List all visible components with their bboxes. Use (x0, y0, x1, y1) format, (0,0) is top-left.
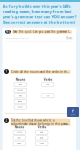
staticText: Verbs (44, 78, 52, 81)
button[interactable]: jump (35, 136, 48, 140)
staticText: Nouns (15, 125, 24, 129)
button[interactable]: garden (14, 88, 26, 92)
staticText: school (17, 131, 22, 133)
button[interactable]: river (13, 136, 25, 140)
staticText: Nouns (16, 78, 25, 81)
staticText: ML (6, 30, 10, 33)
staticText: PUBLISHED: 09:14 EDT, 12 May 2016 (5, 37, 29, 39)
staticText: Verbs (38, 125, 46, 129)
button[interactable]: sat (41, 94, 54, 98)
staticText: jump (40, 137, 43, 139)
staticText: Share (66, 36, 73, 40)
staticText: read (40, 143, 44, 144)
staticText: river (17, 137, 21, 139)
staticText: 2 (5, 119, 7, 122)
staticText: Share (70, 114, 75, 116)
staticText: garden (17, 89, 23, 91)
staticText: fence (18, 100, 22, 102)
button[interactable]: ran (41, 82, 54, 87)
button[interactable]: book (13, 141, 25, 146)
staticText: book (17, 143, 21, 144)
staticText: house (18, 106, 23, 108)
button[interactable]: school (13, 130, 25, 134)
staticText: f (72, 108, 74, 114)
button[interactable]: Share on Facebook (67, 107, 79, 117)
staticText: dog (19, 84, 22, 85)
button[interactable]: house (14, 105, 26, 109)
button[interactable]: read (35, 141, 48, 146)
staticText: As fury builds over this year's SATs rea… (2, 3, 76, 25)
staticText: Take the quiz: Can you pass the grammar … (13, 30, 71, 33)
button[interactable]: walk (35, 130, 48, 134)
button[interactable]: fence (14, 99, 26, 103)
staticText: ran (46, 84, 49, 85)
staticText: Circle all the nouns and the verbs in th… (11, 70, 70, 74)
staticText: walk (40, 131, 43, 133)
staticText: night (19, 95, 22, 97)
button[interactable]: dog (14, 82, 26, 87)
button[interactable]: night (14, 94, 26, 98)
staticText: Tick the box that shows where a subordin… (11, 119, 70, 126)
staticText: sat (47, 95, 49, 97)
staticText: 1 (5, 70, 7, 73)
